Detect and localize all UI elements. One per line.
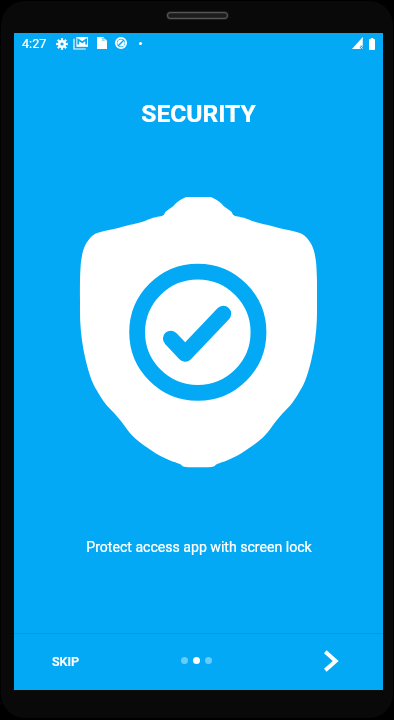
staticText: Protect access app with screen lock xyxy=(86,539,312,556)
button[interactable]: Next xyxy=(308,639,352,683)
staticText: SKIP xyxy=(52,654,80,669)
staticText: 4:27 xyxy=(22,36,47,51)
staticText: SECURITY xyxy=(141,99,256,128)
button[interactable]: SKIP xyxy=(41,644,91,679)
